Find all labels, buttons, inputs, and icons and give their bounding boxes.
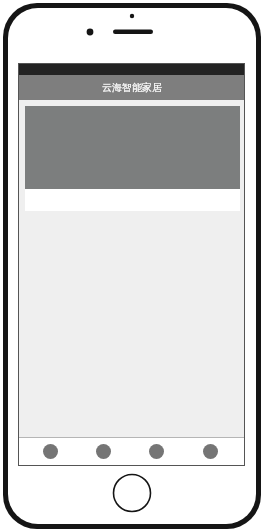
button[interactable]: 云海智能家居 xyxy=(19,75,244,100)
button[interactable]: Devices xyxy=(89,438,117,465)
button[interactable]: Profile xyxy=(196,438,224,465)
staticText: 云海智能家居 xyxy=(102,81,162,94)
button[interactable] xyxy=(25,106,240,211)
button[interactable]: Scenes xyxy=(142,438,170,465)
button[interactable]: Home xyxy=(36,438,64,465)
